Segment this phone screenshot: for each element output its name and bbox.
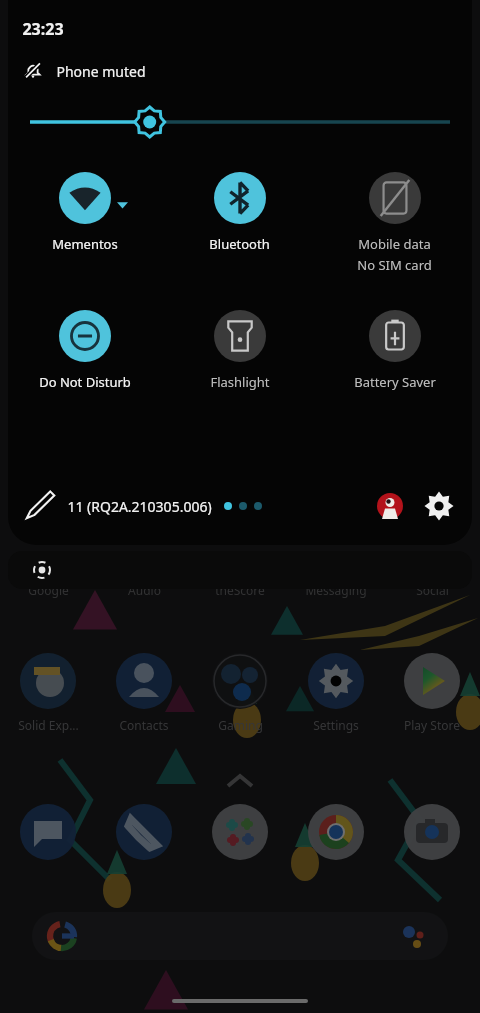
staticText: Social <box>416 582 449 598</box>
staticText: Flashlight <box>210 373 270 391</box>
staticText: Messaging <box>305 582 367 598</box>
staticText: No SIM card <box>357 256 432 274</box>
button[interactable]: Search <box>32 912 448 960</box>
staticText: 23:23 <box>22 18 64 40</box>
button[interactable]: Mementos <box>8 172 162 253</box>
staticText: Mobile data <box>358 235 431 253</box>
button[interactable]: App <box>288 804 384 860</box>
button[interactable]: Gaming <box>192 653 288 733</box>
button[interactable]: Solid Exp... <box>0 653 96 733</box>
staticText: Settings <box>313 717 359 733</box>
button[interactable]: Settings <box>288 653 384 733</box>
button[interactable]: User <box>374 490 406 522</box>
staticText: Google <box>28 582 69 598</box>
staticText: Do Not Disturb <box>39 373 131 391</box>
button[interactable]: Settings <box>422 489 456 523</box>
staticText: theScore <box>215 582 265 598</box>
staticText: 11 (RQ2A.210305.006) <box>67 497 212 516</box>
button[interactable]: App <box>192 804 288 860</box>
button[interactable]: Battery Saver <box>317 310 472 391</box>
button[interactable]: Screen record <box>8 551 472 589</box>
button[interactable]: Contacts <box>96 653 192 733</box>
button[interactable]: Edit tiles <box>24 491 54 521</box>
staticText: Phone muted <box>56 62 146 81</box>
staticText: Gaming <box>218 717 263 733</box>
button[interactable]: Bluetooth <box>162 172 317 253</box>
button[interactable]: Mobile data <box>317 172 472 274</box>
button[interactable]: Phone muted <box>22 60 472 82</box>
button[interactable]: App <box>384 804 480 860</box>
staticText: Battery Saver <box>354 373 436 391</box>
button[interactable]: App <box>96 804 192 860</box>
staticText: Audio <box>128 582 161 598</box>
button[interactable]: App <box>0 804 96 860</box>
staticText: Solid Exp... <box>18 717 79 733</box>
staticText: Contacts <box>119 717 169 733</box>
staticText: Bluetooth <box>209 235 270 253</box>
staticText: Mementos <box>52 235 118 253</box>
button[interactable]: Flashlight <box>162 310 317 391</box>
button[interactable]: Play Store <box>384 653 480 733</box>
button[interactable]: Do Not Disturb <box>8 310 162 391</box>
staticText: Play Store <box>404 717 460 733</box>
button[interactable]: Brightness <box>30 104 450 140</box>
